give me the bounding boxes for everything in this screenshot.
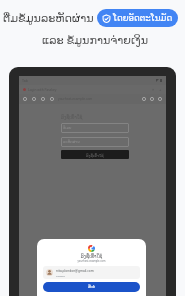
button[interactable]: ສືບຕໍ່ — [43, 282, 140, 292]
staticText: ສືບຕໍ່ — [88, 285, 96, 289]
staticText: Login with Passkey — [28, 88, 57, 92]
staticText: yourhost.example.com — [58, 97, 93, 101]
staticText: ໂດຍອັດຕະໂນມັດ — [113, 13, 173, 23]
button[interactable]: Verified — [97, 9, 178, 27]
button[interactable]: ລົງຊື່ເຂົ້າໃຊ້ — [61, 150, 129, 159]
staticText: ລົງຊື່ເຂົ້າໃຊ້ — [86, 153, 104, 157]
staticText: ລົງຊື່ເຂົ້າໃຊ້ — [61, 115, 83, 120]
staticText: Tab — [22, 78, 28, 83]
staticText: nita.plondon@gmail.com — [56, 269, 94, 273]
staticText: yourhost.example.com — [43, 259, 140, 263]
staticText: Passkey — [56, 274, 65, 277]
button[interactable]: nita.plondon@gmail.com — [43, 266, 140, 279]
staticText: ລະຫັດຜ່ານ — [63, 140, 80, 144]
other: Verified — [102, 14, 111, 23]
staticText: ລົງຊື່ເຂົ້າໃຊ້ — [43, 254, 140, 259]
staticText: ຕື່ມຂໍ້ມູນລະຫັດຜ່ານ — [3, 12, 94, 25]
staticText: ແລະ ຂໍ້ມູນການຈ່າຍເງິນ — [0, 32, 148, 47]
staticText: + — [159, 87, 162, 92]
staticText: ອີເມນ — [63, 126, 72, 130]
